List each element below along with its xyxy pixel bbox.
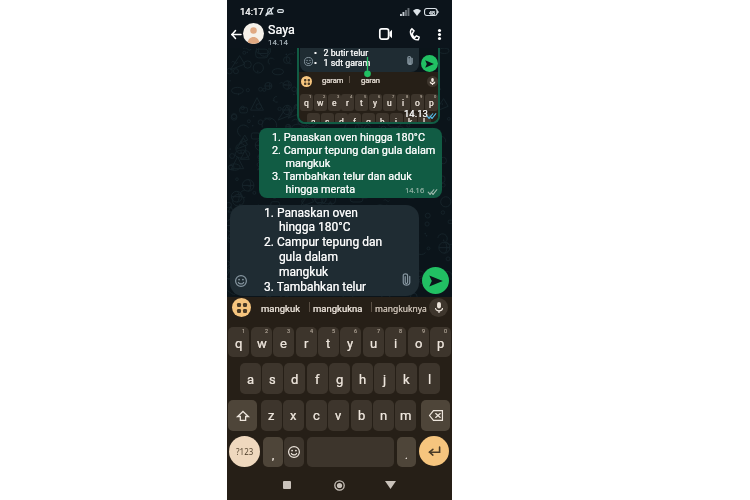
button[interactable]: 8 bbox=[385, 327, 406, 357]
button[interactable]: Voice input bbox=[429, 298, 448, 317]
staticText: b bbox=[358, 408, 366, 423]
button[interactable]: a bbox=[240, 363, 261, 394]
staticText: 14.13 bbox=[404, 108, 428, 119]
staticText: s bbox=[269, 372, 276, 387]
staticText: q bbox=[304, 98, 309, 108]
button[interactable]: Back bbox=[227, 26, 244, 43]
staticText: i bbox=[402, 98, 405, 108]
staticText: c bbox=[313, 408, 320, 423]
staticText: 14:17 bbox=[240, 6, 264, 17]
staticText: e bbox=[332, 98, 337, 108]
button[interactable]: h bbox=[352, 363, 373, 394]
staticText: 0 bbox=[434, 94, 437, 99]
button[interactable]: v bbox=[328, 400, 349, 431]
button[interactable]: Attach bbox=[399, 272, 414, 287]
button[interactable]: 0 bbox=[430, 327, 451, 357]
staticText: l bbox=[428, 372, 432, 387]
staticText: 9 bbox=[420, 94, 423, 99]
button[interactable]: s bbox=[262, 363, 283, 394]
staticText: 0 bbox=[444, 328, 448, 334]
button[interactable]: Symbols bbox=[229, 436, 260, 467]
button[interactable]: . bbox=[397, 437, 416, 467]
staticText: 4 bbox=[310, 328, 314, 334]
button[interactable]: 9 bbox=[408, 327, 429, 357]
staticText: o bbox=[415, 336, 423, 351]
button[interactable]: b bbox=[351, 400, 372, 431]
staticText: ?123 bbox=[236, 446, 254, 457]
button[interactable]: l bbox=[419, 363, 440, 394]
button[interactable]: g bbox=[329, 363, 350, 394]
button[interactable]: More options bbox=[430, 25, 448, 43]
button[interactable]: Profile photo bbox=[243, 23, 264, 44]
staticText: h bbox=[359, 372, 367, 387]
staticText: w bbox=[317, 98, 324, 108]
button[interactable]: c bbox=[306, 400, 327, 431]
button[interactable]: d bbox=[284, 363, 305, 394]
staticText: a bbox=[247, 372, 255, 387]
button[interactable]: j bbox=[374, 363, 395, 394]
staticText: 2 bbox=[323, 94, 326, 99]
staticText: t bbox=[360, 98, 363, 108]
staticText: o bbox=[415, 98, 420, 108]
staticText: g bbox=[336, 372, 344, 387]
button[interactable]: Voice call bbox=[405, 25, 424, 44]
staticText: garam bbox=[322, 76, 344, 85]
staticText: e bbox=[280, 336, 287, 351]
button[interactable]: z bbox=[261, 400, 282, 431]
staticText: 5 bbox=[332, 328, 336, 334]
button[interactable]: Emoji bbox=[232, 272, 250, 290]
button[interactable]: 1. Panaskan oven hingga 180°C 2. Campur … bbox=[230, 205, 419, 296]
staticText: s bbox=[325, 117, 330, 122]
button[interactable]: Enter bbox=[419, 436, 449, 466]
button[interactable]: 1. Panaskan oven hingga 180°C 2. Campur … bbox=[259, 128, 442, 198]
button[interactable]: 3 bbox=[273, 327, 294, 357]
staticText: 9 bbox=[422, 328, 426, 334]
staticText: 2 bbox=[265, 328, 269, 334]
button[interactable]: Video call bbox=[376, 24, 395, 43]
staticText: m bbox=[400, 408, 412, 423]
button[interactable]: Backspace bbox=[421, 400, 450, 431]
staticText: 3 bbox=[337, 94, 340, 99]
staticText: 8 bbox=[399, 328, 403, 334]
button[interactable]: 2 bbox=[251, 327, 272, 357]
button[interactable]: Emoji bbox=[284, 437, 304, 467]
staticText: garan bbox=[361, 76, 380, 85]
button[interactable]: Shift bbox=[228, 400, 257, 431]
button[interactable]: f bbox=[307, 363, 328, 394]
staticText: p bbox=[437, 336, 445, 351]
staticText: 7 bbox=[377, 328, 381, 334]
staticText: • 2 butir telur • 1 sdt garam bbox=[314, 48, 371, 68]
button[interactable]: 1 bbox=[228, 327, 249, 357]
staticText: 1 bbox=[309, 94, 312, 99]
staticText: 6 bbox=[378, 94, 381, 99]
button[interactable]: k bbox=[396, 363, 417, 394]
button[interactable]: Home bbox=[331, 477, 347, 493]
staticText: d bbox=[339, 117, 344, 122]
staticText: mangkuk bbox=[261, 303, 300, 314]
staticText: 5 bbox=[364, 94, 367, 99]
staticText: 1 bbox=[242, 328, 246, 334]
button[interactable]: m bbox=[395, 400, 416, 431]
staticText: k bbox=[408, 117, 413, 122]
staticText: 14.14 bbox=[268, 38, 289, 47]
button[interactable]: 6 bbox=[340, 327, 361, 357]
button[interactable]: n bbox=[373, 400, 394, 431]
staticText: 8 bbox=[406, 94, 409, 99]
button[interactable]: Back bbox=[382, 477, 398, 493]
button[interactable]: 7 bbox=[363, 327, 384, 357]
button[interactable]: 5 bbox=[318, 327, 339, 357]
button[interactable]: Photo message bbox=[297, 48, 440, 124]
staticText: l bbox=[423, 117, 426, 122]
staticText: 1. Panaskan oven hingga 180°C 2. Campur … bbox=[264, 206, 383, 294]
button[interactable]: Send bbox=[422, 267, 449, 294]
button[interactable]: x bbox=[283, 400, 304, 431]
staticText: k bbox=[403, 372, 410, 387]
staticText: . bbox=[405, 449, 408, 462]
button[interactable]: Recents bbox=[279, 477, 295, 493]
staticText: d bbox=[291, 372, 299, 387]
button[interactable]: , bbox=[263, 437, 283, 467]
button[interactable]: Keyboard switcher bbox=[232, 298, 251, 317]
staticText: Saya bbox=[268, 22, 295, 37]
button[interactable]: 4 bbox=[296, 327, 317, 357]
